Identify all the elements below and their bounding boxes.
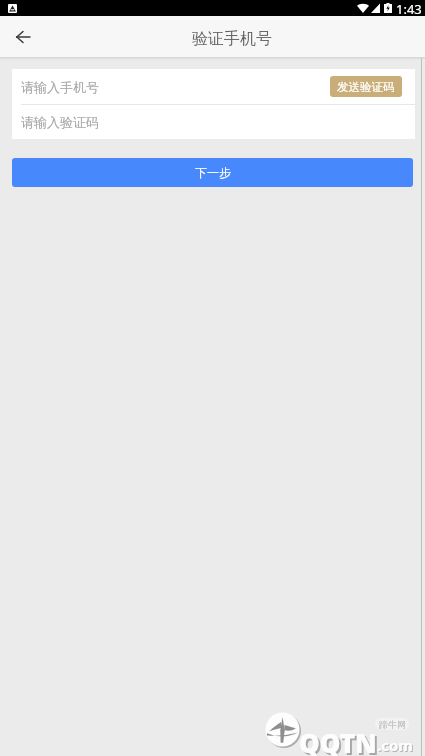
staticText: 请输入手机号 (21, 79, 99, 95)
staticText: 发送验证码 (337, 80, 395, 94)
staticText: 下一步 (195, 165, 231, 180)
button[interactable]: 请输入验证码 (12, 105, 415, 139)
staticText: QQTN (301, 727, 379, 756)
staticText: 蹄牛网 (379, 719, 406, 730)
button[interactable]: 发送验证码 (330, 76, 402, 97)
button[interactable]: 下一步 (12, 158, 413, 187)
button[interactable]: 请输入手机号 (12, 69, 415, 104)
staticText: .com (377, 735, 413, 755)
staticText: 1:43 (396, 0, 422, 16)
staticText: 验证手机号 (192, 29, 272, 49)
staticText: 请输入验证码 (21, 114, 99, 130)
button[interactable]: Back (7, 21, 39, 53)
staticText: .com (378, 736, 414, 756)
staticText: QQTN (299, 725, 377, 756)
